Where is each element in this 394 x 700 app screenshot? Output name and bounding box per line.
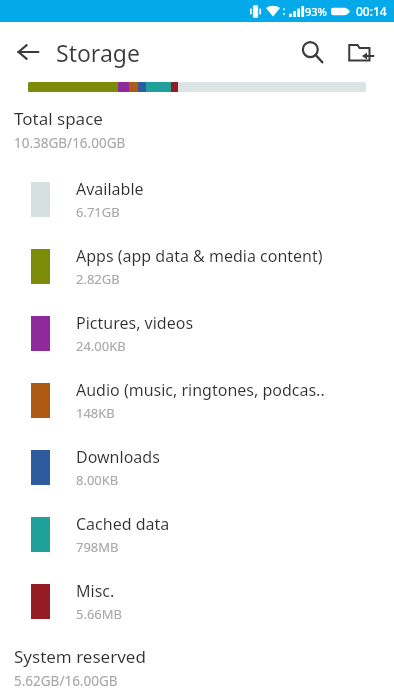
staticText: Available: [76, 178, 144, 200]
button[interactable]: Audio (music, ringtones, podcas..: [0, 367, 394, 434]
staticText: Storage: [56, 37, 140, 68]
staticText: Cached data: [76, 513, 170, 535]
staticText: 5.66MB: [76, 605, 123, 623]
button[interactable]: Downloads: [0, 434, 394, 501]
staticText: 148KB: [76, 404, 115, 422]
staticText: 6.71GB: [76, 203, 120, 221]
staticText: System reserved: [14, 645, 146, 668]
staticText: Total space: [14, 107, 103, 130]
button[interactable]: Misc.: [0, 568, 394, 635]
staticText: Downloads: [76, 446, 160, 468]
button[interactable]: Pictures, videos: [0, 300, 394, 367]
staticText: Pictures, videos: [76, 312, 194, 334]
staticText: 93%: [305, 4, 327, 19]
staticText: 5.62GB/16.00GB: [14, 672, 118, 690]
button[interactable]: Cached data: [0, 501, 394, 568]
button[interactable]: Apps (app data & media content): [0, 233, 394, 300]
staticText: 798MB: [76, 538, 119, 556]
staticText: Misc.: [76, 580, 115, 602]
staticText: 24.00KB: [76, 337, 126, 355]
staticText: Audio (music, ringtones, podcas..: [76, 379, 325, 401]
button[interactable]: Search: [288, 28, 336, 76]
button[interactable]: Move to folder: [336, 28, 384, 76]
button[interactable]: Available: [0, 166, 394, 233]
staticText: 00:14: [356, 3, 387, 19]
staticText: 10.38GB/16.00GB: [14, 134, 126, 152]
staticText: Apps (app data & media content): [76, 245, 323, 267]
button[interactable]: Back: [6, 30, 50, 74]
staticText: 2.82GB: [76, 270, 120, 288]
staticText: 8.00KB: [76, 471, 119, 489]
